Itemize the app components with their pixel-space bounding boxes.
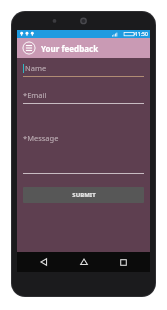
button[interactable]: Recent apps	[110, 252, 136, 272]
button[interactable]: Home	[71, 252, 97, 272]
button[interactable]: SUBMIT	[23, 187, 144, 203]
staticText: Your feedback	[41, 43, 99, 54]
button[interactable]: *Email	[23, 90, 144, 104]
staticText: 11:50	[135, 31, 148, 38]
button[interactable]: Open navigation menu	[22, 41, 36, 55]
staticText: *Message	[23, 133, 59, 143]
button[interactable]: *Message	[23, 133, 144, 174]
staticText: SUBMIT	[72, 191, 96, 199]
button[interactable]: Back	[31, 252, 57, 272]
staticText: *Email	[23, 90, 47, 100]
button[interactable]: Name	[23, 63, 144, 77]
staticText: Name	[25, 63, 47, 73]
